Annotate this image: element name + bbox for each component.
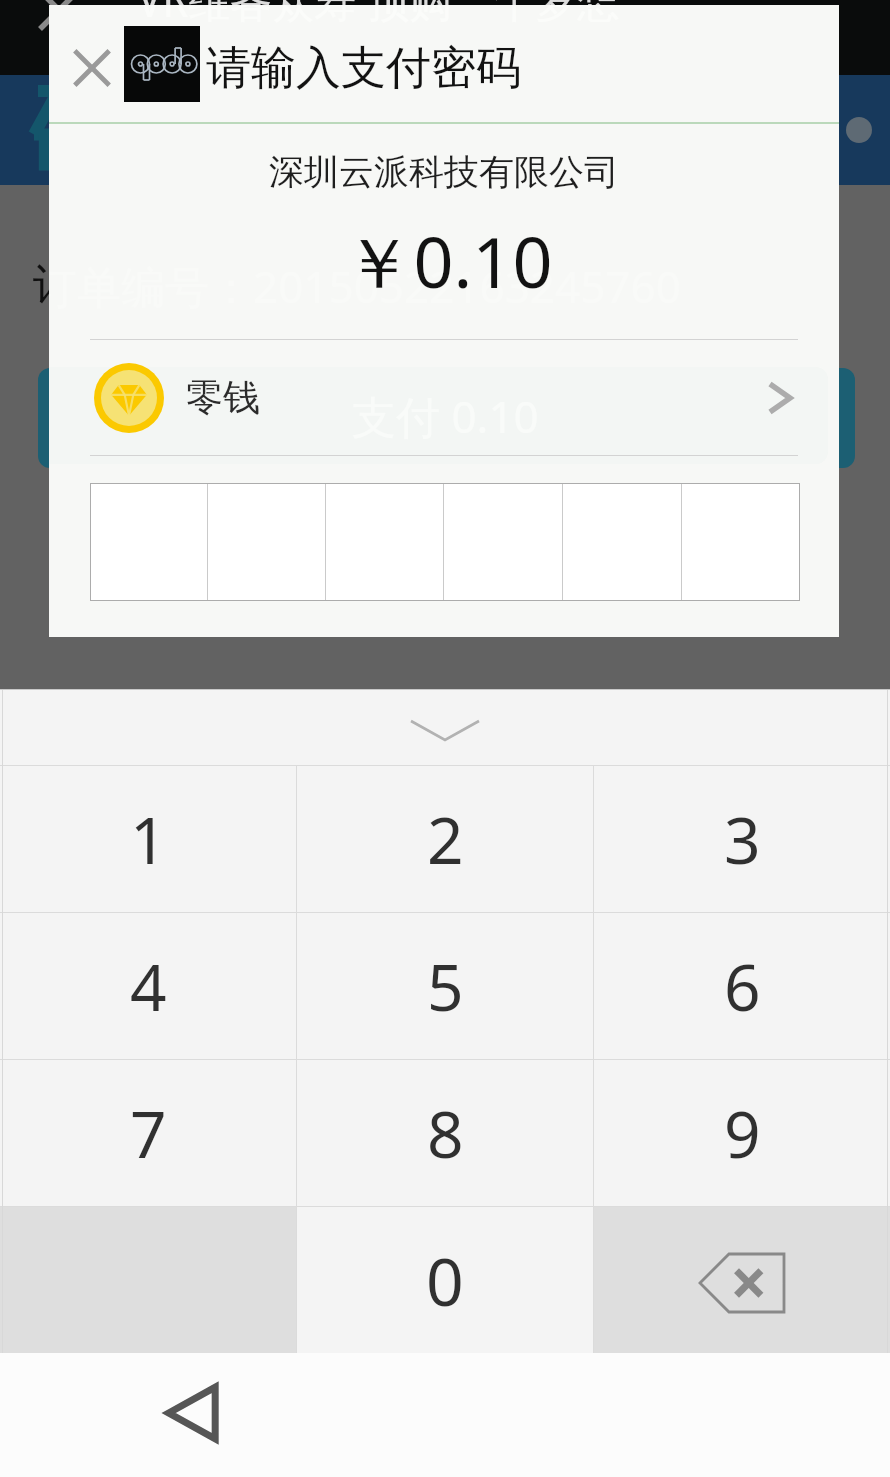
staticText: 9 <box>724 1090 761 1177</box>
button[interactable]: 1 <box>0 766 296 912</box>
button[interactable]: 零钱 <box>49 340 839 455</box>
button[interactable]: 9 <box>594 1060 890 1206</box>
button[interactable]: 0 <box>297 1207 593 1353</box>
button[interactable]: 3 <box>594 766 890 912</box>
button[interactable]: 7 <box>0 1060 296 1206</box>
staticText: 6 <box>724 943 761 1030</box>
button[interactable]: Close <box>56 32 128 104</box>
button[interactable]: Hide keyboard <box>0 690 890 765</box>
staticText: VR维客众筹·预购一个梦想 <box>137 5 620 29</box>
staticText: ￥0.10 <box>53 213 839 309</box>
staticText: 8 <box>427 1090 464 1177</box>
staticText: 2 <box>427 796 464 883</box>
staticText: 4 <box>130 943 167 1030</box>
staticText: VR维客众筹·预购一个梦想 <box>137 0 620 24</box>
button[interactable]: Back <box>160 1382 222 1444</box>
staticText: 5 <box>427 943 464 1030</box>
staticText: 1 <box>130 796 167 883</box>
staticText: 7 <box>130 1090 167 1177</box>
button[interactable]: Backspace <box>594 1207 890 1353</box>
button[interactable]: 6 <box>594 913 890 1059</box>
button[interactable]: 2 <box>297 766 593 912</box>
staticText: 深圳云派科技有限公司 <box>49 150 839 194</box>
button[interactable]: 8 <box>297 1060 593 1206</box>
staticText: 零钱 <box>186 374 260 421</box>
staticText: 请输入支付密码 <box>206 40 521 97</box>
staticText: 0 <box>426 1235 464 1325</box>
staticText: 3 <box>724 796 761 883</box>
staticText: 订单编号：20150522163245760 <box>33 253 681 313</box>
button[interactable]: 5 <box>297 913 593 1059</box>
button[interactable]: 4 <box>0 913 296 1059</box>
staticText: 订单编号：20150522163245760 <box>49 256 681 316</box>
